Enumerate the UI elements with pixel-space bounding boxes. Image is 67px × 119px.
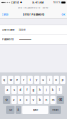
button[interactable]: y — [34, 76, 39, 84]
button[interactable]: u — [41, 76, 46, 84]
button[interactable]: m — [50, 96, 56, 104]
button[interactable]: o — [54, 76, 59, 84]
button[interactable]: 123 — [6, 106, 14, 114]
staticText: o — [55, 78, 57, 82]
button[interactable]: c — [24, 96, 30, 104]
staticText: Enter the password for “Server” — [17, 6, 49, 9]
staticText: ◆ — [19, 1, 22, 4]
staticText: y — [36, 78, 38, 82]
staticText: t — [30, 78, 31, 82]
button[interactable]: q — [2, 76, 7, 84]
button[interactable]: t — [28, 76, 33, 84]
staticText: ⇧ — [5, 98, 8, 102]
staticText: m — [52, 98, 54, 102]
staticText: 9:41 AM — [32, 1, 43, 4]
button[interactable]: f — [24, 86, 30, 94]
button[interactable]: r — [21, 76, 26, 84]
staticText: d — [19, 88, 21, 92]
staticText: Enter Password — [22, 13, 44, 16]
button[interactable]: ⇧ — [3, 96, 10, 104]
button[interactable]: Password — [0, 35, 67, 44]
button[interactable]: p — [60, 76, 65, 84]
button[interactable]: x — [18, 96, 23, 104]
staticText: n — [45, 98, 47, 102]
button[interactable]: ⌫ — [57, 96, 64, 104]
button[interactable]: w — [8, 76, 13, 84]
staticText: space — [33, 108, 38, 111]
staticText: 123 — [9, 108, 12, 111]
staticText: p — [62, 78, 64, 82]
staticText: v — [32, 98, 34, 102]
button[interactable]: l — [57, 86, 62, 94]
staticText: j — [46, 88, 47, 92]
button[interactable]: s — [11, 86, 17, 94]
button[interactable]: g — [31, 86, 36, 94]
staticText: •••••••••••• — [19, 38, 31, 41]
button[interactable]: a — [5, 86, 10, 94]
staticText: w — [10, 78, 12, 82]
staticText: ♁ — [17, 108, 19, 111]
button[interactable]: d — [18, 86, 23, 94]
button[interactable]: Username — [0, 25, 67, 35]
staticText: b — [39, 98, 41, 102]
staticText: u — [42, 78, 44, 82]
staticText: i — [49, 78, 50, 82]
staticText: a — [6, 88, 8, 92]
staticText: jdoe — [19, 28, 26, 31]
staticText: Carrier — [10, 1, 19, 4]
staticText: h — [39, 88, 41, 92]
button[interactable]: h — [37, 86, 43, 94]
staticText: l — [59, 88, 60, 92]
staticText: OK — [61, 13, 65, 16]
staticText: 100% — [53, 1, 61, 4]
staticText: k — [52, 88, 54, 92]
button[interactable]: j — [44, 86, 49, 94]
button[interactable]: i — [47, 76, 52, 84]
staticText: ⌫ — [58, 98, 62, 102]
staticText: c — [26, 98, 28, 102]
staticText: q — [3, 78, 5, 82]
staticText: return — [52, 108, 58, 111]
button[interactable]: OK — [60, 10, 67, 18]
button[interactable]: b — [37, 96, 43, 104]
staticText: r — [23, 78, 24, 82]
staticText: g — [32, 88, 34, 92]
button[interactable]: space — [22, 106, 48, 114]
button[interactable]: v — [31, 96, 36, 104]
staticText: x — [19, 98, 21, 102]
staticText: Username — [2, 28, 15, 31]
staticText: e — [16, 78, 18, 82]
staticText: Cancel — [2, 13, 9, 16]
staticText: z — [13, 98, 15, 102]
staticText: f — [26, 88, 27, 92]
button[interactable]: return — [49, 106, 61, 114]
button[interactable]: ♁ — [16, 106, 21, 114]
button[interactable]: z — [11, 96, 17, 104]
button[interactable]: Cancel — [0, 10, 10, 18]
staticText: Password — [2, 38, 14, 41]
button[interactable]: e — [15, 76, 20, 84]
button[interactable]: n — [44, 96, 49, 104]
button[interactable]: k — [50, 86, 56, 94]
